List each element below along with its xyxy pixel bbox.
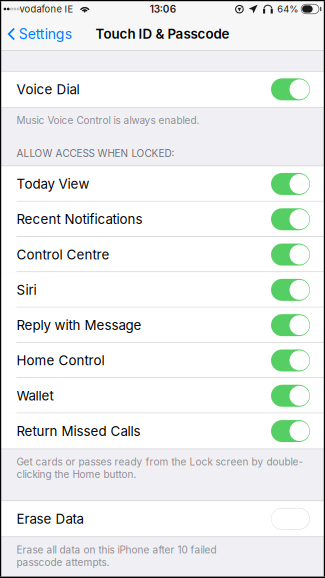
button[interactable]: Voice Dial — [0, 72, 325, 107]
staticText: Home Control — [16, 352, 104, 368]
button[interactable]: Today View — [0, 166, 325, 202]
staticText: Today View — [16, 176, 89, 192]
staticText: 13:06 — [150, 3, 176, 15]
staticText: Control Centre — [16, 246, 109, 263]
button[interactable]: Recent Notifications — [0, 202, 325, 237]
staticText: ALLOW ACCESS WHEN LOCKED: — [16, 147, 174, 159]
staticText: vodafone IE — [19, 3, 73, 15]
staticText: Recent Notifications — [16, 211, 142, 227]
button[interactable]: Home Control — [0, 343, 325, 378]
staticText: Reply with Message — [16, 317, 141, 333]
staticText: 64% — [277, 3, 298, 15]
staticText: clicking the Home button. — [16, 468, 136, 480]
staticText: passcode attempts. — [16, 556, 109, 568]
staticText: Wallet — [16, 388, 53, 404]
button[interactable]: Reply with Message — [0, 307, 325, 343]
staticText: Touch ID & Passcode — [95, 26, 229, 42]
staticText: Return Missed Calls — [16, 423, 140, 439]
button[interactable]: Control Centre — [0, 237, 325, 272]
staticText: Erase all data on this iPhone after 10 f… — [16, 544, 216, 556]
staticText: Voice Dial — [16, 81, 79, 97]
staticText: Music Voice Control is always enabled. — [16, 114, 199, 126]
button[interactable]: Wallet — [0, 378, 325, 413]
staticText: Settings — [19, 25, 72, 42]
button[interactable]: Settings — [0, 18, 80, 50]
button[interactable]: Erase Data — [0, 501, 325, 536]
staticText: Erase Data — [16, 511, 83, 527]
staticText: Get cards or passes ready from the Lock … — [16, 456, 303, 468]
staticText: Siri — [16, 282, 36, 298]
button[interactable]: Siri — [0, 272, 325, 307]
button[interactable]: Return Missed Calls — [0, 413, 325, 449]
